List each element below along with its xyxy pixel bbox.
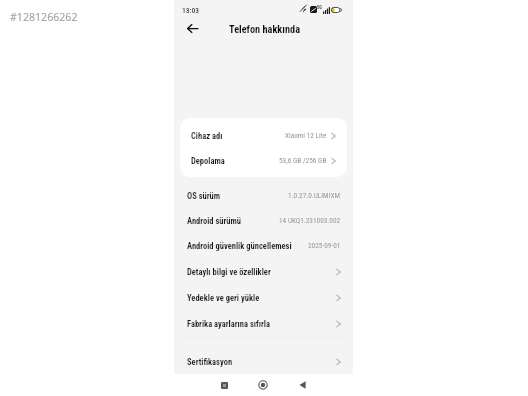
staticText: 13:03: [182, 6, 200, 15]
staticText: Detaylı bilgi ve özellikler: [187, 267, 271, 277]
button[interactable]: OS sürüm: [174, 183, 353, 208]
button[interactable]: Back: [184, 20, 201, 37]
staticText: Cihaz adı: [191, 131, 223, 141]
staticText: OS sürüm: [187, 191, 221, 201]
button[interactable]: Recent apps: [215, 376, 233, 394]
button[interactable]: Depolama: [180, 148, 347, 173]
staticText: 53,6 GB /256 GB: [279, 156, 327, 165]
staticText: Yedekle ve geri yükle: [187, 293, 260, 303]
staticText: Xiaomi 12 Lite: [285, 131, 327, 140]
button[interactable]: Android güvenlik güncellemesi: [174, 233, 353, 258]
button[interactable]: Android sürümü: [174, 208, 353, 233]
staticText: Android sürümü: [187, 216, 242, 226]
button[interactable]: Cihaz adı: [180, 123, 347, 148]
staticText: Android güvenlik güncellemesi: [187, 241, 292, 251]
staticText: 5G: [317, 5, 323, 10]
button[interactable]: Back: [293, 376, 311, 394]
staticText: Sertifikasyon: [187, 357, 233, 367]
staticText: Fabrika ayarlarına sıfırla: [187, 319, 270, 329]
staticText: Telefon hakkında: [229, 23, 301, 35]
staticText: 14 UKQ1.231003.002: [279, 216, 341, 225]
button[interactable]: Detaylı bilgi ve özellikler: [174, 259, 353, 284]
button[interactable]: Home: [254, 376, 272, 394]
button[interactable]: Sertifikasyon: [174, 349, 353, 374]
staticText: 1.0.27.0.ULIMIXM: [288, 191, 341, 200]
staticText: 2025-09-01: [308, 241, 341, 250]
staticText: #1281266262: [10, 10, 78, 24]
staticText: Depolama: [191, 156, 225, 166]
button[interactable]: Fabrika ayarlarına sıfırla: [174, 311, 353, 336]
button[interactable]: Yedekle ve geri yükle: [174, 285, 353, 310]
